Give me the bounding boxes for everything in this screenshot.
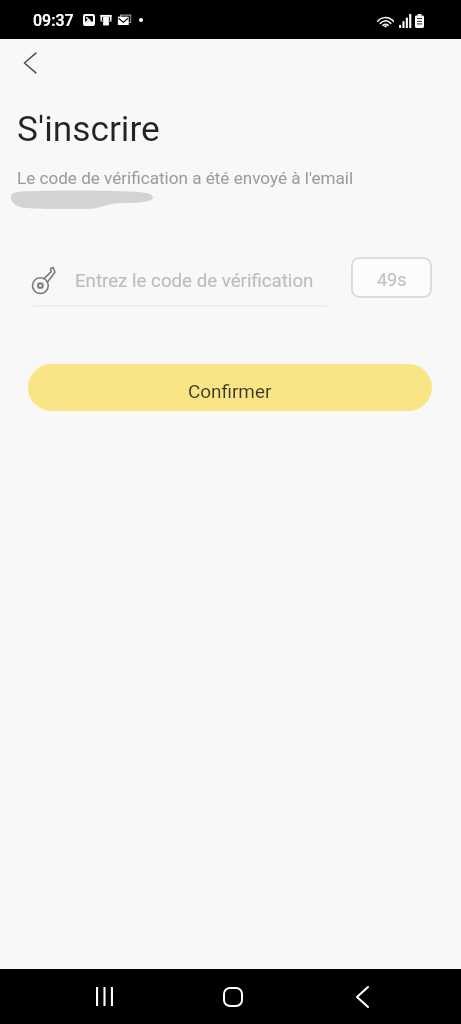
staticText: Le code de vérification a été envoyé à l… [17,168,354,188]
button[interactable]: Confirmer [28,364,432,411]
staticText: 49s [377,269,407,290]
staticText: Entrez le code de vérification [75,270,314,292]
staticText: 09:37 [33,11,74,30]
staticText: S'inscrire [17,108,160,149]
staticText: Confirmer [188,380,272,402]
button[interactable]: Recent apps [80,969,128,1024]
button[interactable]: Back [338,969,386,1024]
button[interactable]: 49s [351,257,432,298]
button[interactable]: Back [6,39,54,87]
button[interactable]: Entrez le code de vérification [28,257,328,307]
button[interactable]: Home [209,969,257,1024]
